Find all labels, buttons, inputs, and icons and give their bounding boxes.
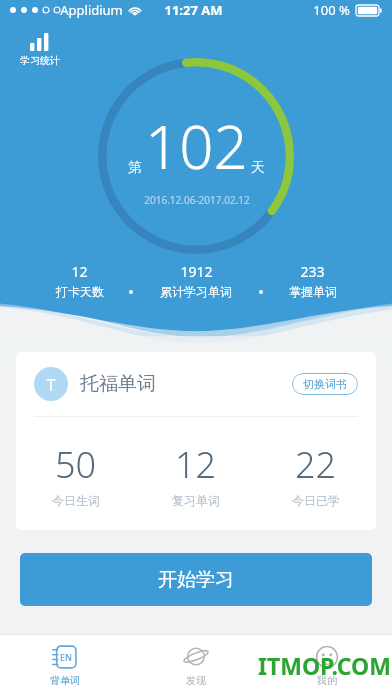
button[interactable]: 发现: [130, 635, 261, 696]
staticText: 我的: [317, 674, 337, 687]
staticText: 50: [55, 440, 97, 489]
staticText: 102: [145, 105, 248, 187]
staticText: 2016.12.06-2017.02.12: [144, 193, 250, 207]
staticText: 第: [128, 159, 142, 177]
staticText: 背单词: [50, 674, 80, 687]
staticText: T: [46, 373, 56, 396]
staticText: ITMOP.COM: [258, 650, 391, 681]
button[interactable]: 50: [16, 440, 136, 508]
button[interactable]: 12: [34, 262, 125, 299]
staticText: 11:27 AM: [164, 1, 223, 19]
button[interactable]: 12: [136, 440, 256, 508]
staticText: 100 %: [313, 1, 350, 19]
staticText: 切换词书: [303, 377, 347, 391]
staticText: 掌握单词: [289, 284, 337, 299]
other: 发现: [183, 644, 209, 670]
staticText: 打卡天数: [56, 284, 104, 299]
staticText: 天: [251, 159, 265, 177]
button[interactable]: 22: [256, 440, 376, 508]
staticText: Applidium: [60, 1, 123, 19]
staticText: EN: [60, 651, 72, 663]
other: 我的: [314, 644, 340, 670]
staticText: 1912: [180, 262, 213, 281]
staticText: 今日已学: [292, 493, 340, 508]
button[interactable]: 切换词书: [292, 373, 358, 395]
staticText: 托福单词: [80, 372, 156, 396]
staticText: 发现: [186, 674, 206, 687]
staticText: 12: [175, 440, 217, 489]
button[interactable]: 学习统计: [14, 30, 66, 70]
staticText: 学习统计: [20, 54, 60, 67]
staticText: 累计学习单词: [160, 284, 232, 299]
staticText: 22: [295, 440, 337, 489]
button[interactable]: 开始学习: [20, 553, 372, 606]
other: 背单词: [52, 644, 78, 670]
button[interactable]: 我的: [261, 635, 392, 696]
staticText: 复习单词: [172, 493, 220, 508]
staticText: 12: [71, 262, 88, 281]
button[interactable]: 1912: [137, 262, 255, 299]
button[interactable]: 233: [267, 262, 358, 299]
button[interactable]: T: [16, 352, 376, 530]
staticText: 今日生词: [52, 493, 100, 508]
staticText: 开始学习: [158, 568, 234, 592]
staticText: 233: [300, 262, 325, 281]
button[interactable]: 背单词: [0, 635, 130, 696]
